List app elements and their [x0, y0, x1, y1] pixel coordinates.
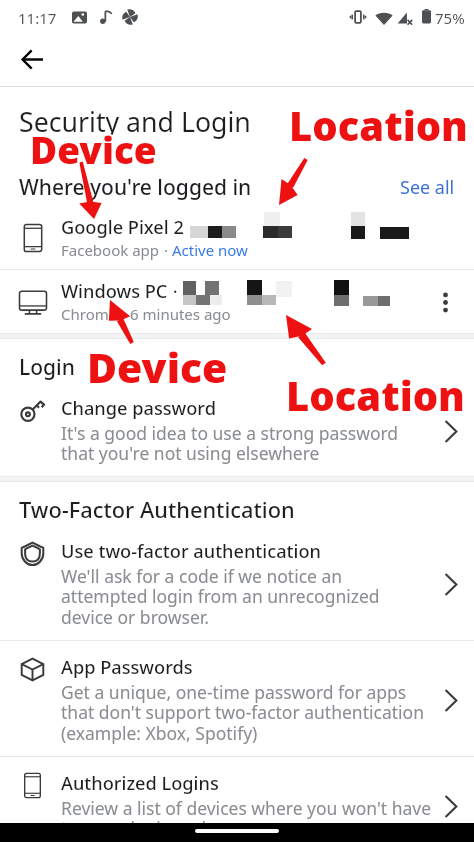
button[interactable]: Authorized Logins: [0, 757, 474, 842]
staticText: Location: [286, 368, 465, 422]
staticText: 11:17: [18, 8, 57, 28]
staticText: See all: [400, 175, 455, 200]
staticText: Facebook app: [61, 240, 160, 260]
staticText: Authorized Logins: [61, 771, 219, 796]
staticText: Review a list of devices where you won't…: [61, 796, 432, 840]
staticText: Two-Factor Authentication: [19, 495, 295, 525]
button[interactable]: Google Pixel 2: [0, 206, 474, 269]
staticText: ·: [184, 215, 194, 240]
staticText: 6 minutes ago: [130, 304, 231, 324]
staticText: Location: [288, 370, 467, 424]
staticText: Location: [291, 100, 470, 154]
staticText: Location: [289, 98, 468, 152]
staticText: Location: [285, 370, 464, 424]
button[interactable]: Use two-factor authentication: [0, 525, 474, 640]
button[interactable]: See all: [396, 171, 459, 204]
staticText: ·: [168, 279, 178, 304]
staticText: Location: [285, 367, 464, 421]
button[interactable]: Windows PC: [0, 270, 474, 333]
staticText: Device: [32, 126, 159, 176]
staticText: Device: [29, 123, 156, 173]
staticText: ·: [118, 304, 130, 324]
button[interactable]: Change password: [0, 382, 474, 476]
staticText: It's a good idea to use a strong passwor…: [61, 421, 399, 465]
staticText: Location: [288, 367, 467, 421]
staticText: Windows PC: [61, 279, 168, 304]
staticText: Device: [29, 126, 156, 176]
staticText: Login: [19, 353, 75, 382]
button[interactable]: App Passwords: [0, 641, 474, 756]
staticText: We'll ask for a code if we notice an att…: [61, 564, 380, 629]
staticText: ·: [160, 240, 172, 260]
staticText: 75%: [435, 8, 465, 28]
staticText: Device: [89, 341, 230, 397]
staticText: Change password: [61, 396, 216, 421]
button[interactable]: Back: [11, 38, 53, 80]
staticText: Device: [86, 341, 227, 397]
button[interactable]: More options: [428, 285, 462, 319]
staticText: Location: [288, 97, 467, 151]
staticText: Chrome: [61, 304, 118, 324]
staticText: Device: [89, 338, 230, 394]
staticText: Get a unique, one-time password for apps…: [61, 680, 424, 745]
staticText: Location: [288, 100, 467, 154]
staticText: Location: [291, 97, 470, 151]
staticText: Google Pixel 2: [61, 215, 184, 240]
staticText: Use two-factor authentication: [61, 539, 321, 564]
staticText: Device: [87, 339, 228, 395]
staticText: Where you're logged in: [19, 173, 252, 202]
staticText: App Passwords: [61, 655, 193, 680]
staticText: Device: [30, 124, 157, 174]
staticText: Device: [32, 123, 159, 173]
staticText: Security and Login: [19, 103, 251, 139]
staticText: Device: [86, 338, 227, 394]
staticText: Active now: [172, 240, 248, 260]
